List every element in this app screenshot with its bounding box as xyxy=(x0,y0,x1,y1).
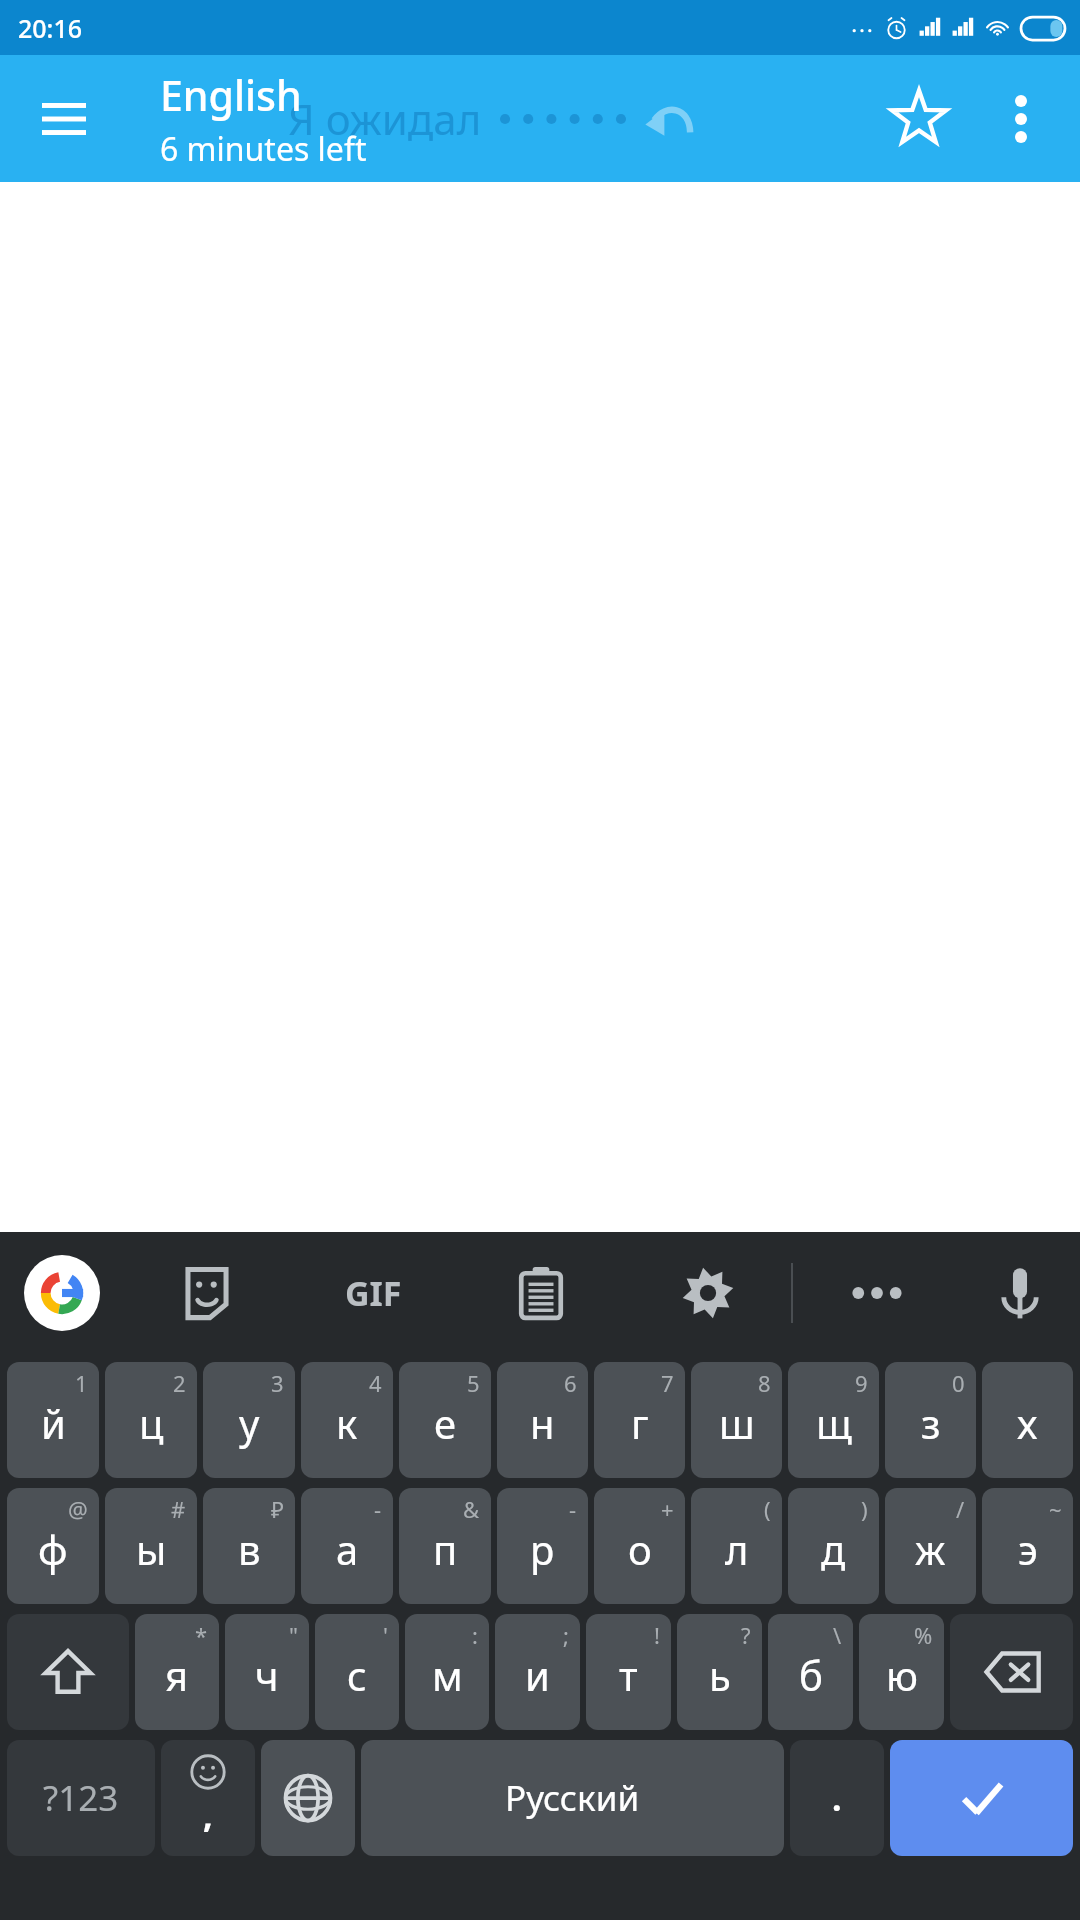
button[interactable]: э xyxy=(982,1488,1073,1604)
button[interactable]: б xyxy=(768,1614,853,1730)
staticText: е xyxy=(434,1396,457,1450)
staticText: л xyxy=(725,1522,749,1576)
staticText: с xyxy=(347,1648,367,1702)
staticText: % xyxy=(914,1620,933,1650)
staticText: . xyxy=(832,1775,842,1821)
staticText: ф xyxy=(38,1522,68,1576)
staticText: ь xyxy=(709,1648,731,1702)
staticText: + xyxy=(661,1494,674,1524)
staticText: ю xyxy=(886,1648,918,1702)
button[interactable]: ц xyxy=(105,1362,197,1478)
button[interactable]: в xyxy=(203,1488,295,1604)
button[interactable]: у xyxy=(203,1362,295,1478)
button[interactable]: More xyxy=(793,1232,960,1354)
button[interactable]: г xyxy=(594,1362,685,1478)
staticText: ! xyxy=(654,1620,660,1650)
button[interactable]: Settings xyxy=(624,1232,791,1354)
button[interactable]: . xyxy=(790,1740,884,1856)
button[interactable]: и xyxy=(495,1614,580,1730)
staticText: ; xyxy=(563,1620,569,1650)
button[interactable]: Google search xyxy=(0,1232,124,1354)
button[interactable]: х xyxy=(982,1362,1073,1478)
staticText: 8 xyxy=(758,1368,771,1398)
staticText: о xyxy=(628,1522,652,1576)
button[interactable]: л xyxy=(691,1488,782,1604)
staticText: г xyxy=(631,1396,649,1450)
button[interactable]: р xyxy=(497,1488,588,1604)
staticText: ~ xyxy=(1049,1494,1062,1524)
staticText: 1 xyxy=(75,1368,88,1398)
button[interactable]: т xyxy=(586,1614,671,1730)
staticText: в xyxy=(238,1522,261,1576)
staticText: @ xyxy=(68,1494,88,1524)
staticText: ? xyxy=(741,1620,751,1650)
button[interactable]: Русский xyxy=(361,1740,784,1856)
staticText: 6 xyxy=(564,1368,577,1398)
button[interactable]: ш xyxy=(691,1362,782,1478)
button[interactable]: Voice input xyxy=(960,1232,1080,1354)
staticText: т xyxy=(619,1648,638,1702)
staticText: : xyxy=(472,1620,478,1650)
staticText: 7 xyxy=(661,1368,674,1398)
button[interactable]: ж xyxy=(885,1488,976,1604)
staticText: н xyxy=(530,1396,555,1450)
button[interactable]: е xyxy=(399,1362,491,1478)
button[interactable]: More options xyxy=(982,80,1060,158)
button[interactable]: GIF xyxy=(290,1232,457,1354)
button[interactable]: м xyxy=(405,1614,489,1730)
staticText: ₽ xyxy=(271,1494,284,1524)
staticText: " xyxy=(289,1620,298,1650)
button[interactable]: Clipboard xyxy=(457,1232,624,1354)
button[interactable]: Stickers xyxy=(124,1232,290,1354)
button[interactable]: к xyxy=(301,1362,393,1478)
button[interactable]: Enter xyxy=(890,1740,1073,1856)
button[interactable]: Shift xyxy=(7,1614,129,1730)
button[interactable]: ч xyxy=(225,1614,309,1730)
button[interactable]: Open navigation menu xyxy=(28,83,100,155)
staticText: ( xyxy=(764,1494,771,1524)
button[interactable]: д xyxy=(788,1488,879,1604)
button[interactable]: Switch language xyxy=(261,1740,355,1856)
staticText: 20:16 xyxy=(18,11,83,45)
button[interactable]: ь xyxy=(677,1614,762,1730)
button[interactable]: я xyxy=(135,1614,219,1730)
button[interactable]: Favorite xyxy=(876,76,962,162)
staticText: ч xyxy=(255,1648,279,1702)
staticText: ' xyxy=(383,1620,388,1650)
staticText: д xyxy=(821,1522,846,1576)
staticText: у xyxy=(239,1396,260,1450)
button[interactable]: с xyxy=(315,1614,399,1730)
button[interactable]: щ xyxy=(788,1362,879,1478)
staticText: б xyxy=(799,1648,823,1702)
button[interactable]: з xyxy=(885,1362,976,1478)
button[interactable]: ф xyxy=(7,1488,99,1604)
button[interactable]: ?123 xyxy=(7,1740,155,1856)
staticText: \ xyxy=(833,1620,842,1650)
staticText: 5 xyxy=(467,1368,480,1398)
button[interactable]: о xyxy=(594,1488,685,1604)
button[interactable]: ю xyxy=(859,1614,944,1730)
staticText: ц xyxy=(139,1396,164,1450)
staticText: , xyxy=(203,1792,213,1838)
staticText: 6 minutes left xyxy=(160,127,367,171)
staticText: * xyxy=(195,1620,208,1650)
button[interactable]: й xyxy=(7,1362,99,1478)
staticText: й xyxy=(41,1396,66,1450)
button[interactable]: Backspace xyxy=(950,1614,1073,1730)
staticText: Я ожидал xyxy=(288,90,482,147)
staticText: 3 xyxy=(271,1368,284,1398)
staticText: з xyxy=(921,1396,941,1450)
button[interactable]: а xyxy=(301,1488,393,1604)
button[interactable]: п xyxy=(399,1488,491,1604)
staticText: ы xyxy=(136,1522,167,1576)
staticText: & xyxy=(463,1494,480,1524)
staticText: / xyxy=(956,1494,965,1524)
staticText: щ xyxy=(816,1396,852,1450)
staticText: э xyxy=(1018,1522,1038,1576)
staticText: а xyxy=(336,1522,359,1576)
staticText: 9 xyxy=(855,1368,868,1398)
staticText: - xyxy=(374,1494,382,1524)
button[interactable]: ы xyxy=(105,1488,197,1604)
button[interactable]: Emoji and comma xyxy=(161,1740,255,1856)
button[interactable]: н xyxy=(497,1362,588,1478)
